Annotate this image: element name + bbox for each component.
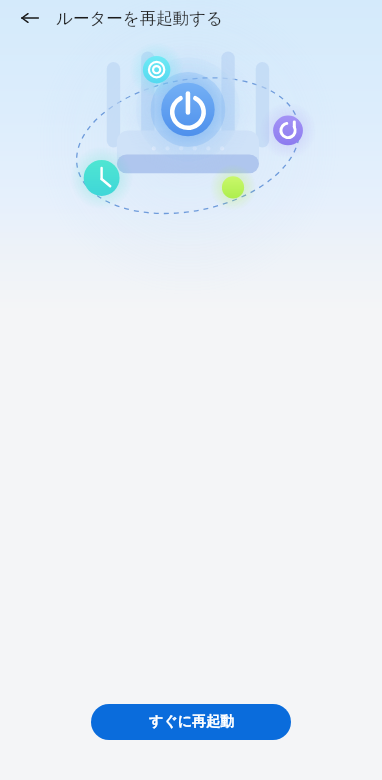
button[interactable]: 戻る [12, 0, 48, 36]
staticText: すぐに再起動 [149, 713, 234, 731]
button[interactable]: すぐに再起動 [91, 704, 291, 740]
staticText: ルーターを再起動する [56, 8, 223, 29]
